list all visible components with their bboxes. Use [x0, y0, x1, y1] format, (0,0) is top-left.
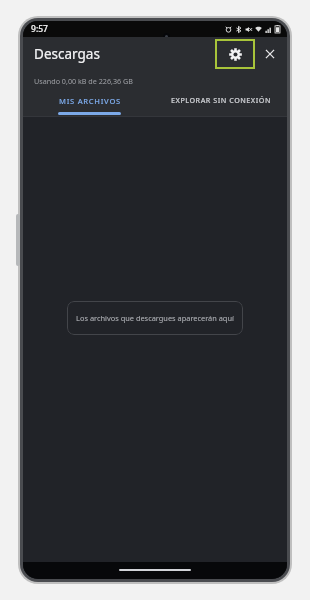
button[interactable]: Close: [255, 39, 285, 69]
button[interactable]: Settings: [215, 39, 255, 69]
staticText: Descargas: [34, 45, 100, 63]
staticText: Usando 0,00 kB de 226,36 GB: [34, 76, 133, 86]
staticText: 9:57: [31, 23, 48, 35]
button[interactable]: Los archivos que descargues aparecerán a…: [67, 301, 243, 335]
staticText: EXPLORAR SIN CONEXIÓN: [171, 95, 271, 105]
staticText: MIS ARCHIVOS: [59, 96, 121, 106]
staticText: Los archivos que descargues aparecerán a…: [76, 313, 234, 323]
button[interactable]: EXPLORAR SIN CONEXIÓN: [155, 90, 287, 116]
button[interactable]: MIS ARCHIVOS: [23, 90, 155, 116]
